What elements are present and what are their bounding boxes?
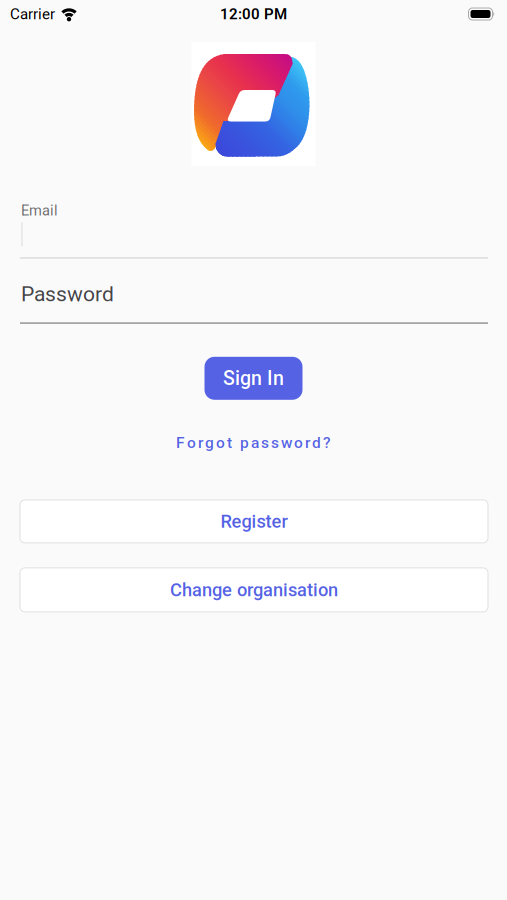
button[interactable]: Password <box>0 282 507 324</box>
button[interactable]: Email <box>0 202 507 259</box>
button[interactable]: Change organisation <box>0 568 507 612</box>
button[interactable]: Register <box>0 500 507 543</box>
staticText: 12:00 PM <box>220 5 287 23</box>
button[interactable]: Sign In <box>204 357 302 400</box>
staticText: Carrier <box>10 5 55 23</box>
staticText: F o r g o t p a s s w o r d ? <box>176 434 331 452</box>
staticText: Sign In <box>223 367 284 390</box>
staticText: Email <box>21 202 58 219</box>
button[interactable]: F o r g o t p a s s w o r d ? <box>176 434 331 452</box>
staticText: Password <box>21 282 114 306</box>
staticText: Change organisation <box>170 579 338 601</box>
staticText: Register <box>220 511 287 532</box>
